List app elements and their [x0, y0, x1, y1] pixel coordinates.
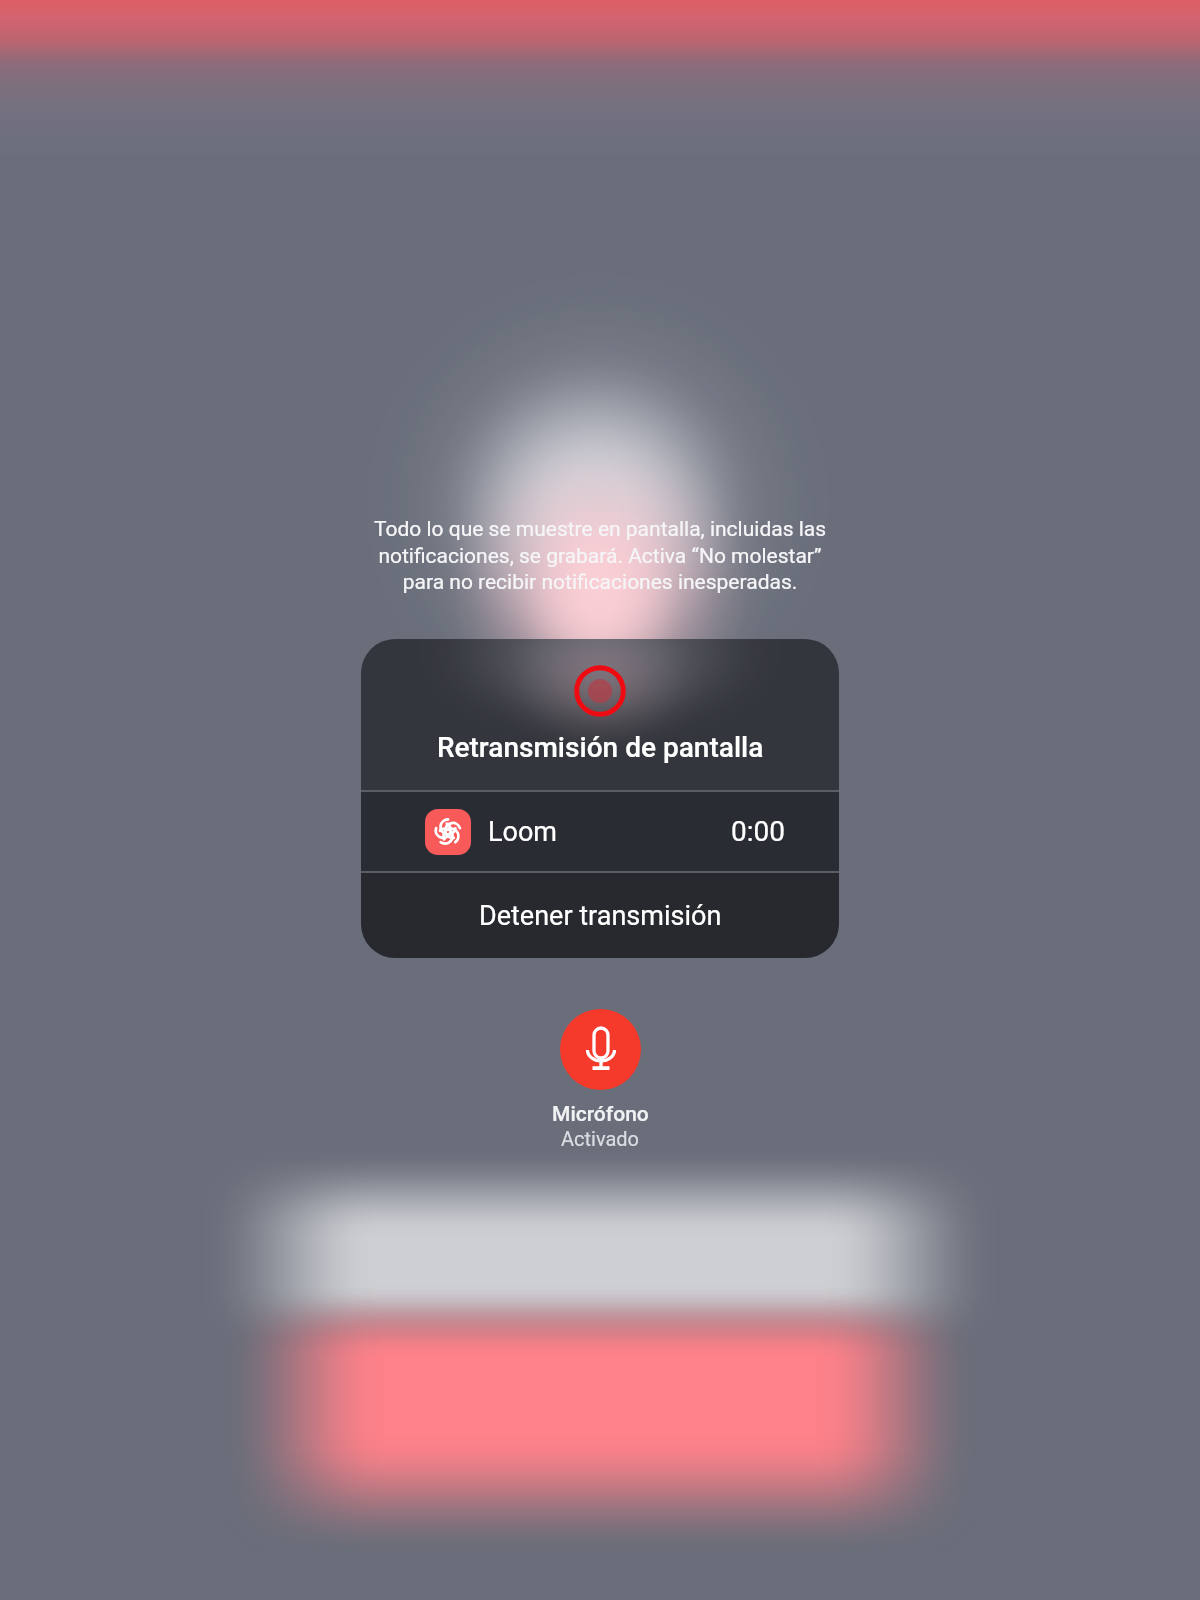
staticText: Detener transmisión: [479, 900, 722, 932]
button[interactable]: Micrófono activado: [560, 1009, 641, 1090]
staticText: Micrófono: [552, 1102, 649, 1127]
button[interactable]: Loom: [361, 792, 839, 871]
staticText: Todo lo que se muestre en pantalla, incl…: [365, 517, 835, 594]
button[interactable]: Detener transmisión: [361, 873, 839, 958]
staticText: Loom: [488, 816, 558, 848]
staticText: Retransmisión de pantalla: [437, 731, 764, 764]
staticText: Activado: [561, 1127, 640, 1150]
staticText: 0:00: [731, 815, 785, 848]
